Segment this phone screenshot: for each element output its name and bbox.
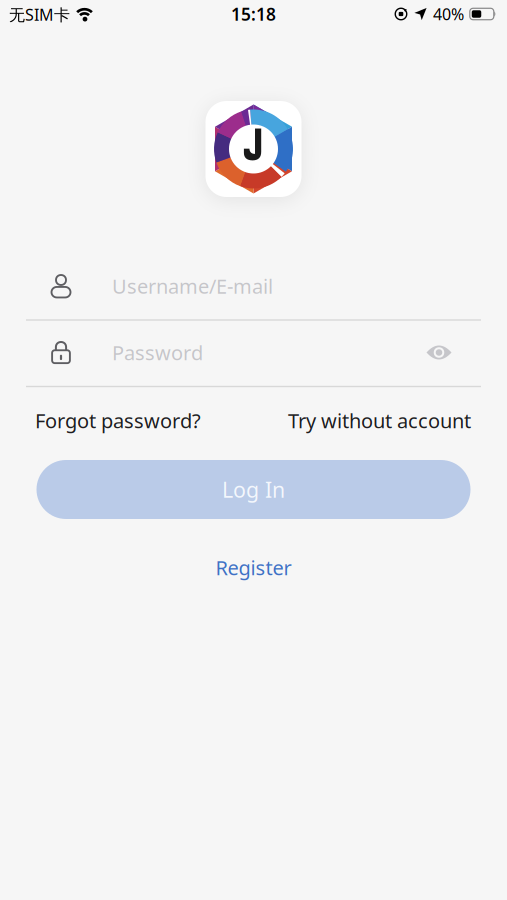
button[interactable]: Log In (36, 460, 470, 519)
staticText: Forgot password? (35, 407, 201, 434)
staticText: Try without account (288, 407, 471, 434)
staticText: Log In (222, 475, 285, 504)
button[interactable]: Try without account (288, 407, 471, 434)
staticText: Password (112, 339, 203, 366)
staticText: 无SIM卡 (9, 4, 70, 25)
button[interactable]: Forgot password? (35, 407, 201, 434)
button[interactable]: Show password (426, 344, 452, 361)
staticText: Username/E-mail (112, 273, 273, 299)
button[interactable]: Register (215, 554, 291, 581)
staticText: Register (215, 554, 291, 581)
staticText: 15:18 (231, 2, 276, 25)
staticText: 40% (433, 3, 464, 25)
